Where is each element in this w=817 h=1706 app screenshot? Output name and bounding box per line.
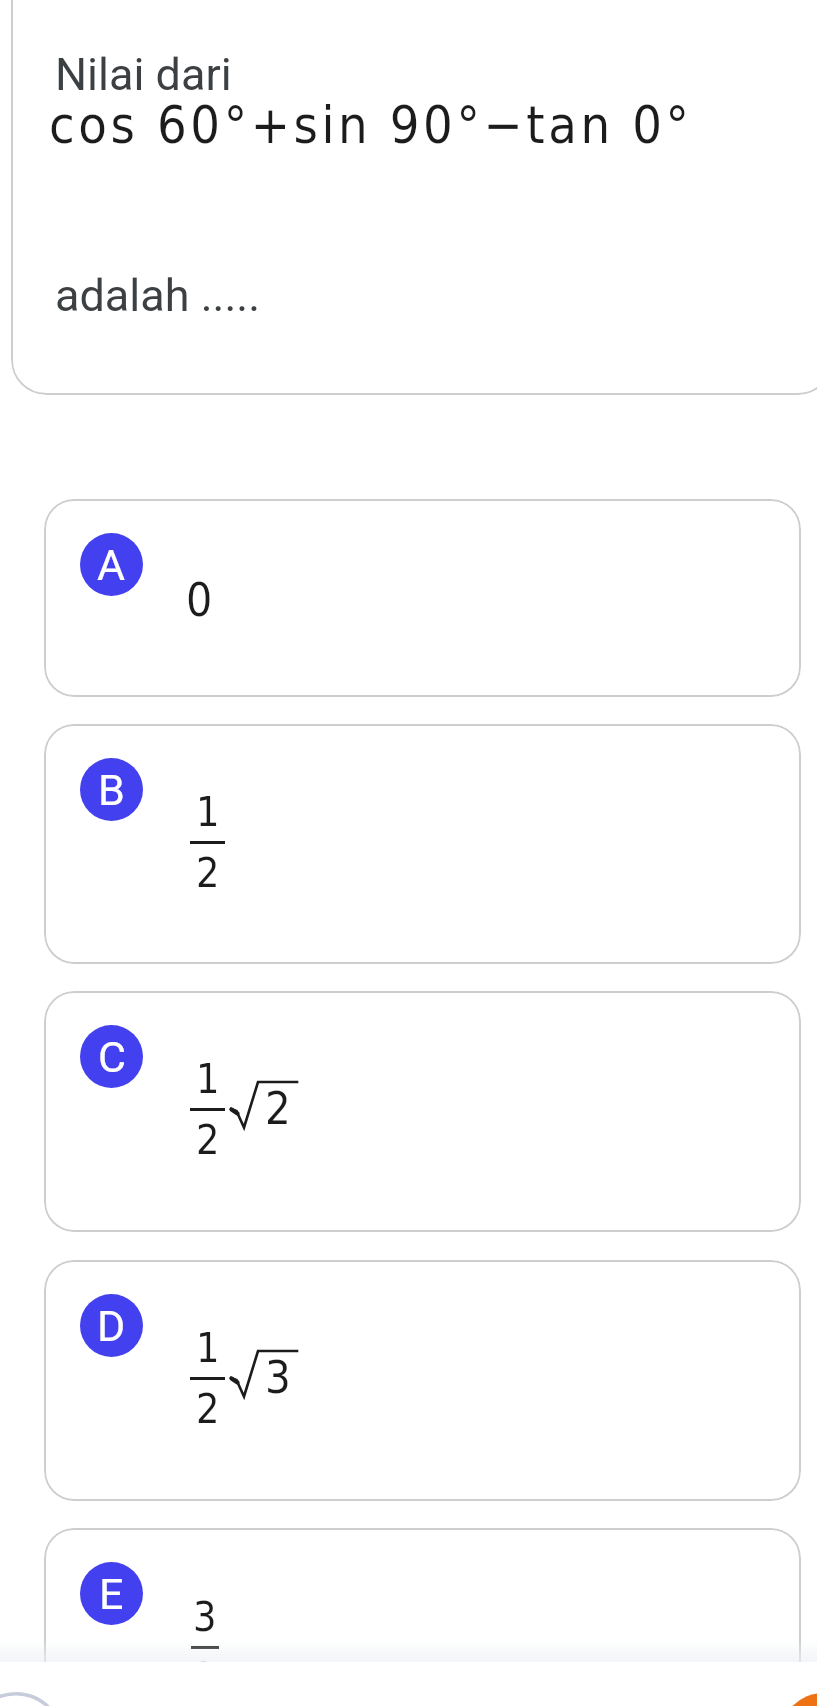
staticText: E — [99, 1569, 124, 1619]
staticText: B — [98, 765, 125, 815]
staticText: 1 — [196, 788, 220, 836]
button[interactable]: Previous question — [0, 1694, 64, 1706]
staticText: 2 — [193, 1654, 217, 1662]
staticText: 2 — [265, 1082, 291, 1134]
staticText: A — [97, 540, 126, 590]
staticText: adalah ..... — [55, 269, 261, 322]
staticText: 0 — [186, 573, 213, 627]
button[interactable]: B — [44, 724, 801, 964]
button[interactable]: D — [44, 1260, 801, 1501]
staticText: 3 — [265, 1351, 291, 1403]
staticText: Nilai dari — [55, 48, 232, 101]
staticText: 2 — [196, 1385, 220, 1433]
button[interactable]: C — [44, 991, 801, 1232]
staticText: 1 — [196, 1324, 220, 1372]
staticText: 1 — [196, 1055, 220, 1103]
staticText: C — [98, 1032, 126, 1082]
button[interactable]: A — [44, 499, 801, 697]
button[interactable]: E — [44, 1528, 801, 1662]
staticText: 2 — [196, 1116, 220, 1164]
button[interactable]: Next question — [781, 1695, 817, 1706]
staticText: cos 60°+sin 90°−tan 0° — [49, 95, 693, 156]
staticText: 3 — [193, 1593, 217, 1641]
staticText: D — [97, 1301, 126, 1351]
staticText: 2 — [196, 849, 220, 897]
